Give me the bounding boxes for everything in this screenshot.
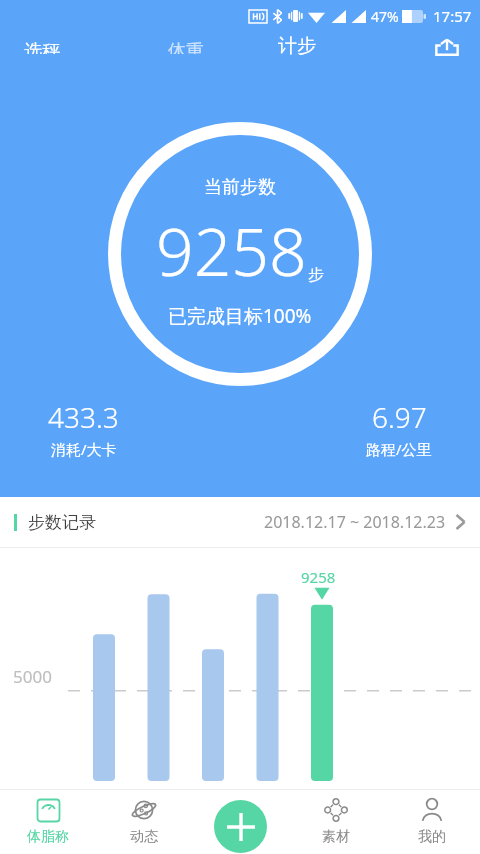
button[interactable]: 素材 <box>288 789 384 854</box>
staticText: 动态 <box>130 828 158 846</box>
staticText: 2018.12.17 ~ 2018.12.23 <box>264 511 446 533</box>
button[interactable]: 动态 <box>96 789 192 854</box>
staticText: 9258 <box>301 567 336 587</box>
staticText: 我的 <box>418 828 446 846</box>
button[interactable]: 步数记录 <box>0 497 480 547</box>
staticText: 路程/公里 <box>366 439 432 459</box>
staticText: 计步 <box>278 34 316 58</box>
staticText: 47% <box>371 7 399 26</box>
button[interactable]: 体重 <box>158 32 214 62</box>
button[interactable]: Add <box>214 800 267 853</box>
staticText: 选秤 <box>24 40 60 54</box>
staticText: 素材 <box>322 828 350 846</box>
staticText: 当前步数 <box>204 176 276 199</box>
staticText: 体重 <box>168 40 204 54</box>
staticText: 体脂称 <box>27 828 69 846</box>
staticText: 9258 <box>156 205 307 295</box>
staticText: 消耗/大卡 <box>51 439 117 459</box>
button[interactable]: 计步 <box>268 32 326 62</box>
staticText: 433.3 <box>48 398 119 436</box>
button[interactable]: 我的 <box>384 789 480 854</box>
staticText: 步 <box>308 265 324 285</box>
button[interactable]: Share <box>428 32 466 62</box>
button[interactable]: 选秤 <box>14 32 70 62</box>
button[interactable]: 体脂称 <box>0 789 96 854</box>
staticText: 步数记录 <box>28 512 96 533</box>
staticText: 5000 <box>13 665 52 688</box>
staticText: 已完成目标100% <box>168 303 312 329</box>
staticText: 6.97 <box>372 398 427 436</box>
staticText: 17:57 <box>433 6 472 26</box>
